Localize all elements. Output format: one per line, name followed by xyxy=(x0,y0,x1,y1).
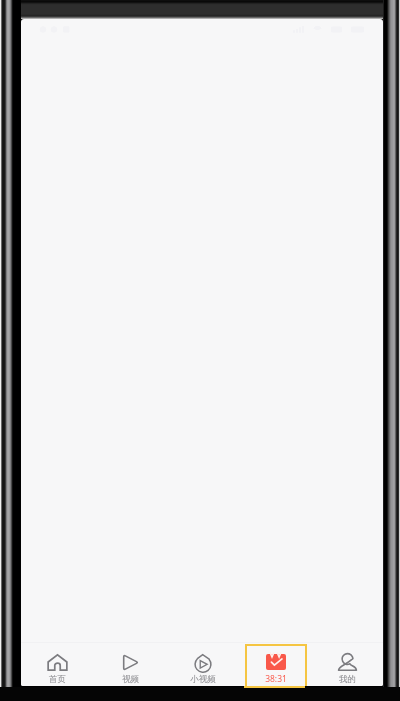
staticText: 38:31 xyxy=(265,673,287,685)
staticText: 小视频 xyxy=(190,674,216,685)
staticText: 视频 xyxy=(122,674,139,685)
button[interactable]: 我的 xyxy=(311,643,383,686)
button[interactable]: 小视频 xyxy=(167,643,239,686)
button[interactable]: 视频 xyxy=(94,643,167,686)
button[interactable]: 首页 xyxy=(21,643,94,686)
staticText: 首页 xyxy=(49,674,66,685)
button[interactable]: 38:31 xyxy=(246,645,306,686)
staticText: 我的 xyxy=(339,674,356,685)
